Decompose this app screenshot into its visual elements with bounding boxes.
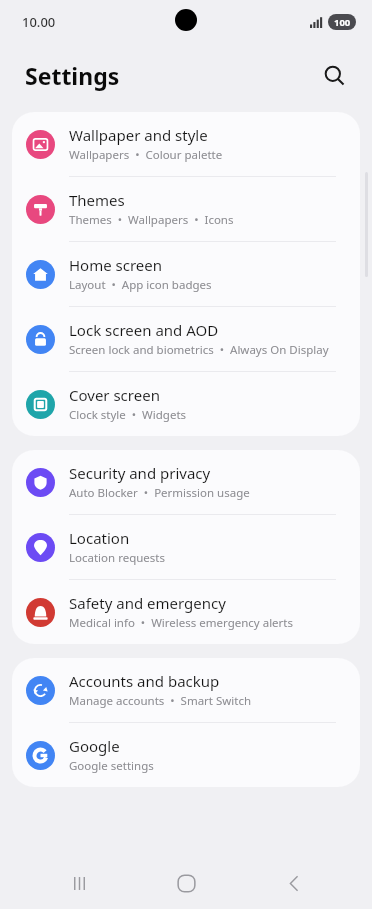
button[interactable]: Back xyxy=(265,857,323,909)
button[interactable]: Home xyxy=(157,857,215,909)
button[interactable]: Home screen xyxy=(12,242,360,307)
staticText: Screen lock and biometrics • Always On D… xyxy=(69,342,329,358)
staticText: Wallpapers • Colour palette xyxy=(69,147,223,163)
staticText: Settings xyxy=(25,60,120,91)
button[interactable]: Lock screen and AOD xyxy=(12,307,360,372)
staticText: Manage accounts • Smart Switch xyxy=(69,693,252,709)
staticText: Themes • Wallpapers • Icons xyxy=(69,212,234,228)
button[interactable]: Search xyxy=(312,53,356,97)
staticText: Google settings xyxy=(69,758,154,774)
staticText: Home screen xyxy=(69,255,163,275)
staticText: Security and privacy xyxy=(69,463,211,483)
button[interactable]: Cover screen xyxy=(12,372,360,436)
staticText: Clock style • Widgets xyxy=(69,407,187,423)
staticText: 10.00 xyxy=(22,13,56,31)
button[interactable]: Security and privacy xyxy=(12,450,360,515)
staticText: Safety and emergency xyxy=(69,593,226,613)
staticText: Auto Blocker • Permission usage xyxy=(69,485,250,501)
staticText: Google xyxy=(69,736,120,756)
staticText: 100 xyxy=(334,16,351,29)
staticText: Location requests xyxy=(69,550,165,566)
staticText: Themes xyxy=(69,190,125,210)
staticText: Cover screen xyxy=(69,385,160,405)
staticText: Medical info • Wireless emergency alerts xyxy=(69,615,293,631)
button[interactable]: Themes xyxy=(12,177,360,242)
staticText: Location xyxy=(69,528,130,548)
staticText: Layout • App icon badges xyxy=(69,277,212,293)
button[interactable]: Wallpaper and style xyxy=(12,112,360,177)
button[interactable]: Recent apps xyxy=(50,857,108,909)
button[interactable]: Safety and emergency xyxy=(12,580,360,644)
button[interactable]: Location xyxy=(12,515,360,580)
staticText: Lock screen and AOD xyxy=(69,320,219,340)
button[interactable]: Google xyxy=(12,723,360,787)
staticText: Wallpaper and style xyxy=(69,125,208,145)
staticText: Accounts and backup xyxy=(69,671,220,691)
button[interactable]: Accounts and backup xyxy=(12,658,360,723)
